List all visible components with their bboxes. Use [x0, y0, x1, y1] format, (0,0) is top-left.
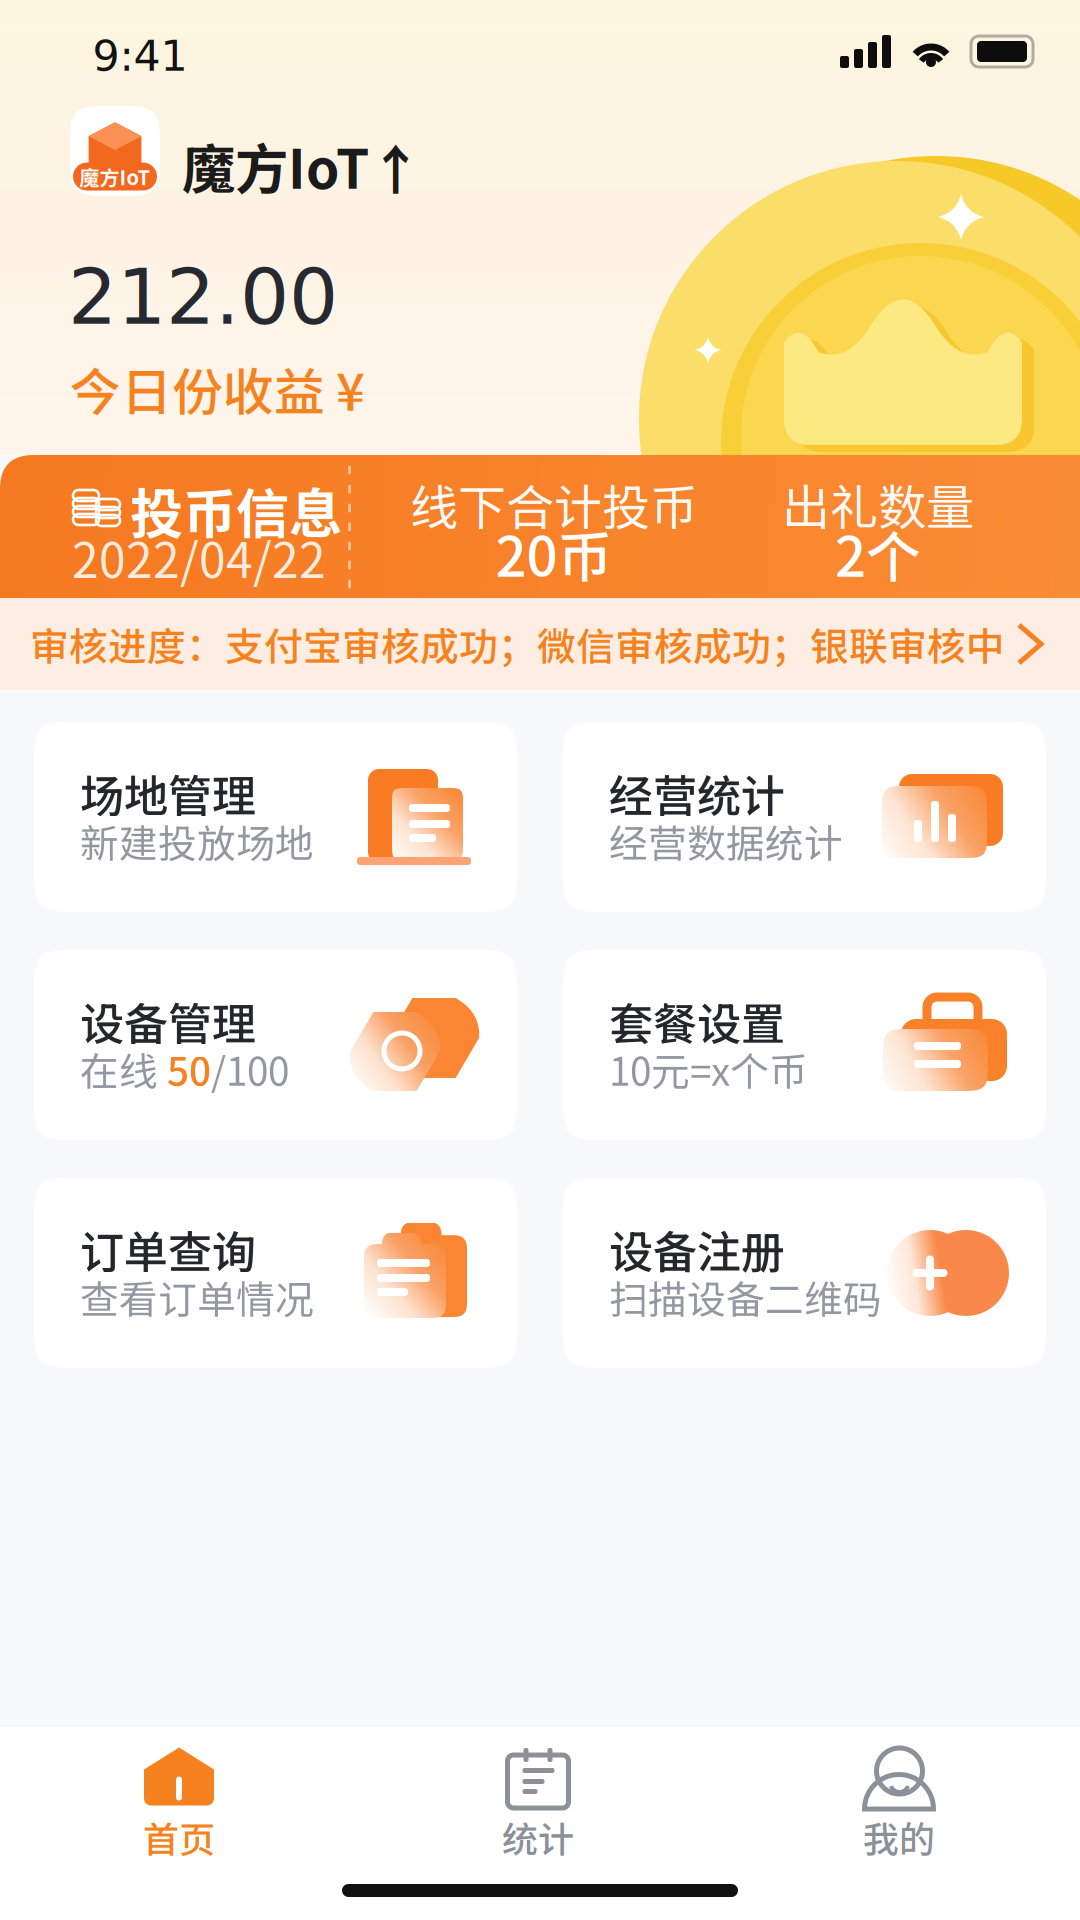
button[interactable]: 经营统计	[563, 722, 1046, 912]
staticText: 首页	[143, 1811, 215, 1863]
staticText: 2个	[835, 513, 921, 593]
staticText: 新建投放场地	[80, 813, 314, 869]
staticText: /100	[211, 1041, 289, 1097]
button[interactable]: 审核进度：支付宝审核成功；微信审核成功；银联审核中	[0, 598, 1080, 690]
button[interactable]: 套餐设置	[563, 950, 1046, 1140]
staticText: 在线	[80, 1041, 167, 1097]
button[interactable]: 设备注册	[563, 1178, 1046, 1368]
staticText: 订单查询	[80, 1217, 256, 1281]
button[interactable]: 首页	[0, 1727, 240, 1877]
button[interactable]: 统计	[0, 1727, 240, 1877]
button[interactable]: 设备管理	[34, 950, 517, 1140]
staticText: 场地管理	[80, 761, 256, 825]
staticText: 设备管理	[80, 989, 256, 1053]
staticText: 2022/04/22	[72, 522, 326, 592]
button[interactable]: 订单查询	[34, 1178, 517, 1368]
staticText: 9:41	[92, 31, 187, 81]
staticText: 设备注册	[609, 1217, 785, 1281]
staticText: 20币	[495, 513, 612, 593]
staticText: 经营数据统计	[609, 813, 843, 869]
staticText: 统计	[502, 1811, 574, 1863]
staticText: 10元=x个币	[609, 1041, 808, 1097]
staticText: 魔方IoT	[79, 162, 150, 191]
staticText: 审核进度：支付宝审核成功；微信审核成功；银联审核中	[30, 616, 1005, 672]
staticText: 投币信息	[130, 471, 342, 549]
staticText: 212.00	[68, 252, 338, 342]
staticText: 扫描设备二维码	[609, 1269, 882, 1325]
staticText: 魔方IoT↑	[182, 127, 422, 204]
staticText: 套餐设置	[609, 989, 785, 1053]
button[interactable]: 场地管理	[34, 722, 517, 912]
staticText: 经营统计	[609, 761, 785, 825]
staticText: 我的	[863, 1811, 935, 1863]
staticText: 今日份收益 ¥	[70, 352, 365, 425]
staticText: 50	[167, 1041, 211, 1097]
button[interactable]: 我的	[0, 1727, 240, 1877]
staticText: 线下合计投币	[410, 469, 698, 539]
staticText: 出礼数量	[782, 469, 974, 539]
staticText: 查看订单情况	[80, 1269, 314, 1325]
